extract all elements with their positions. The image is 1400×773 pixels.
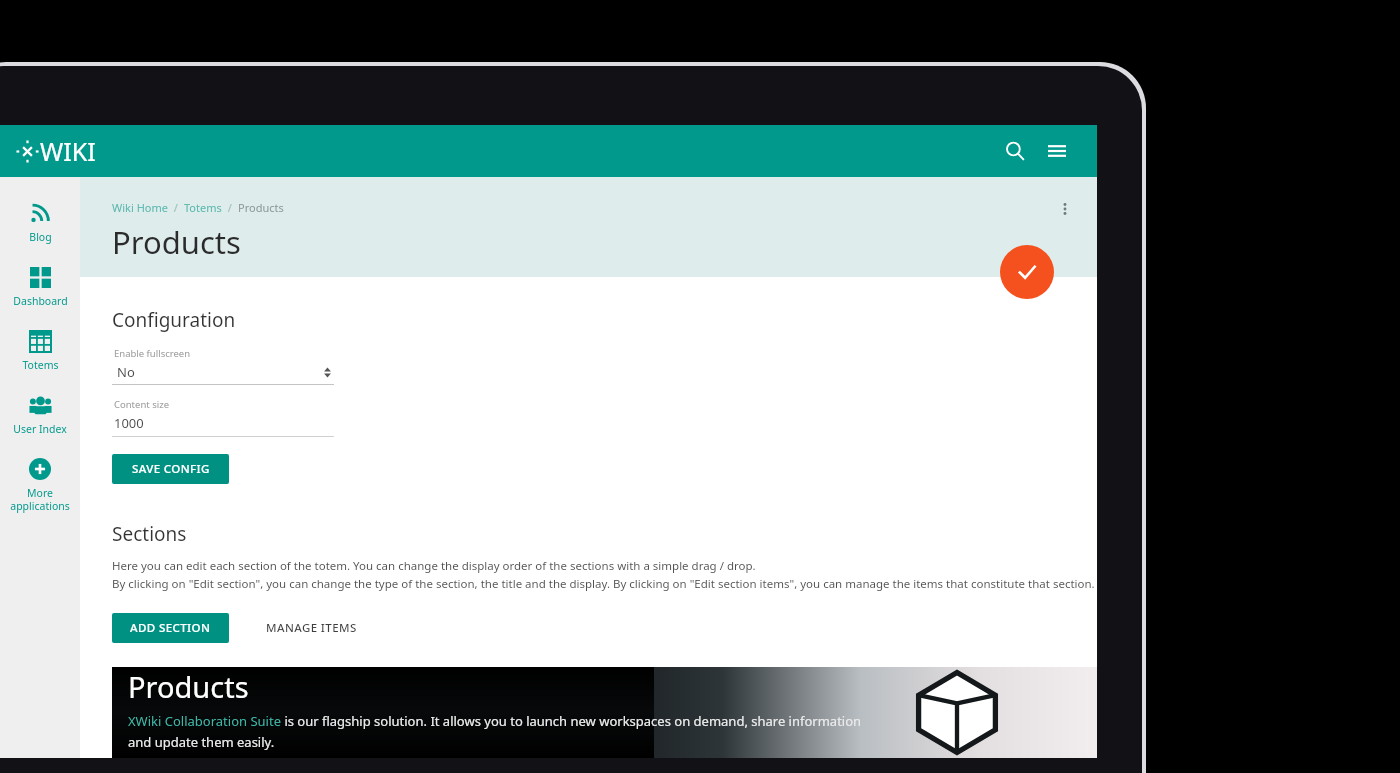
- staticText: Products: [112, 221, 241, 263]
- staticText: MANAGE ITEMS: [266, 620, 357, 636]
- button[interactable]: More applications: [0, 450, 80, 527]
- button[interactable]: WIKI: [12, 130, 100, 172]
- staticText: By clicking on "Edit section", you can c…: [112, 576, 1095, 592]
- staticText: Blog: [29, 230, 52, 244]
- button[interactable]: Wiki Home: [112, 200, 168, 215]
- staticText: Here you can edit each section of the to…: [112, 558, 756, 574]
- staticText: SAVE CONFIG: [132, 461, 210, 477]
- button[interactable]: Confirm: [1000, 245, 1054, 299]
- button[interactable]: Dashboard: [0, 258, 80, 322]
- staticText: is our flagship solution. It allows you …: [281, 712, 862, 730]
- staticText: Sections: [112, 521, 187, 547]
- button[interactable]: User Index: [0, 386, 80, 450]
- staticText: No: [117, 363, 135, 381]
- staticText: Totems: [22, 358, 59, 372]
- button[interactable]: 1000: [114, 414, 144, 432]
- button[interactable]: More options: [1051, 195, 1079, 223]
- button[interactable]: ADD SECTION: [112, 613, 229, 643]
- staticText: WIKI: [40, 134, 96, 168]
- button[interactable]: MANAGE ITEMS: [258, 611, 365, 645]
- button[interactable]: Totems: [0, 322, 80, 386]
- button[interactable]: Products: [112, 667, 1097, 758]
- button[interactable]: Blog: [0, 194, 80, 258]
- button[interactable]: Totems: [184, 200, 222, 215]
- button[interactable]: No: [112, 363, 334, 381]
- button[interactable]: SAVE CONFIG: [112, 454, 229, 484]
- staticText: Configuration: [112, 307, 236, 333]
- staticText: ADD SECTION: [130, 620, 211, 636]
- button[interactable]: Search: [995, 131, 1035, 171]
- staticText: /: [222, 200, 238, 215]
- staticText: /: [168, 200, 184, 215]
- staticText: XWiki Collaboration Suite: [128, 712, 281, 730]
- staticText: Content size: [114, 398, 170, 411]
- staticText: Products: [238, 200, 284, 215]
- staticText: Products: [128, 667, 249, 706]
- staticText: User Index: [13, 422, 67, 436]
- staticText: and update them easily.: [128, 733, 275, 750]
- staticText: More applications: [10, 486, 70, 513]
- staticText: Enable fullscreen: [114, 347, 191, 360]
- staticText: Dashboard: [13, 294, 68, 308]
- button[interactable]: Menu: [1037, 131, 1077, 171]
